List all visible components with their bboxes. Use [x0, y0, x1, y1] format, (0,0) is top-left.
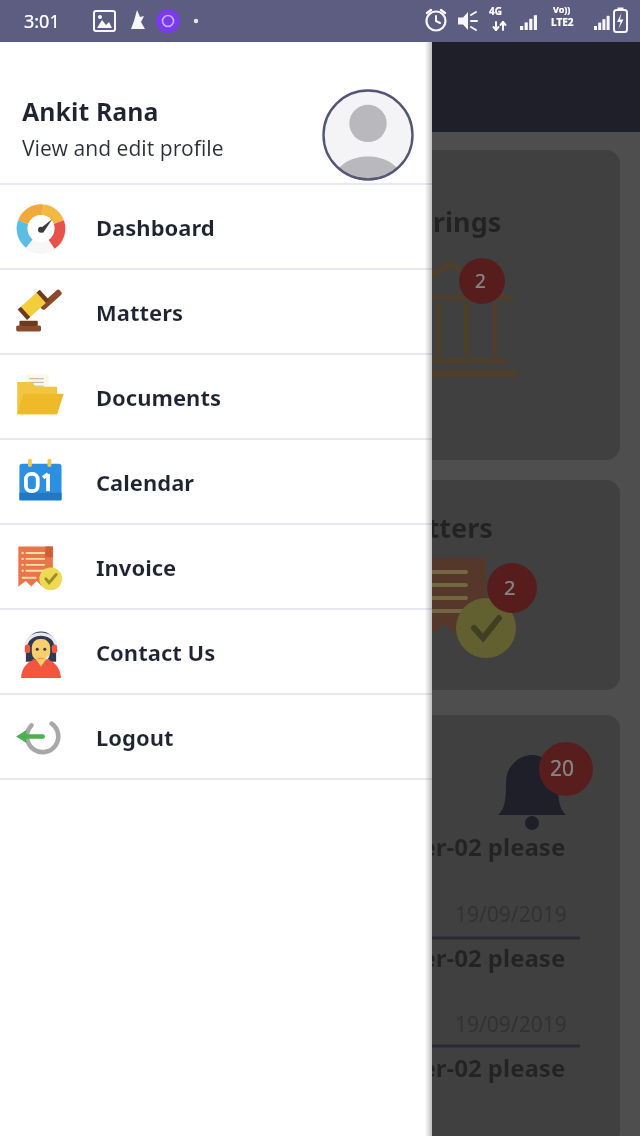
button[interactable]: Dashboard [0, 185, 432, 268]
staticText: Contact Us [96, 637, 216, 667]
staticText: LTE2 [551, 15, 574, 29]
staticText: Calendar [96, 467, 195, 497]
button[interactable]: Logout [0, 695, 432, 778]
staticText: Matters [96, 297, 184, 327]
staticText: 2 [504, 574, 516, 601]
staticText: Dashboard [96, 212, 215, 242]
staticText: View and edit profile [22, 134, 224, 163]
button[interactable]: Contact Us [0, 610, 432, 693]
staticText: Ankit Rana [22, 94, 159, 128]
button[interactable]: Ankit Rana [0, 42, 432, 183]
staticText: 19/09/2019 [455, 900, 567, 929]
button[interactable]: Invoice [0, 525, 432, 608]
staticText: 2 [475, 268, 486, 294]
staticText: Reminder-02 please [330, 1051, 566, 1084]
staticText: 20 [550, 754, 575, 783]
staticText: Documents [96, 382, 221, 412]
staticText: 19/09/2019 [455, 1010, 567, 1039]
button[interactable]: Calendar [0, 440, 432, 523]
staticText: Reminder-02 please [330, 830, 566, 863]
staticText: Vo)) [553, 3, 571, 15]
staticText: Hearings [380, 203, 502, 240]
button[interactable]: Documents [0, 355, 432, 438]
staticText: Matters [386, 509, 493, 546]
staticText: Reminder-02 please [330, 941, 566, 974]
staticText: 4G [489, 4, 502, 18]
staticText: Logout [96, 722, 174, 752]
button[interactable]: Matters [0, 270, 432, 353]
staticText: Invoice [96, 552, 177, 582]
staticText: 3:01 [24, 9, 60, 34]
